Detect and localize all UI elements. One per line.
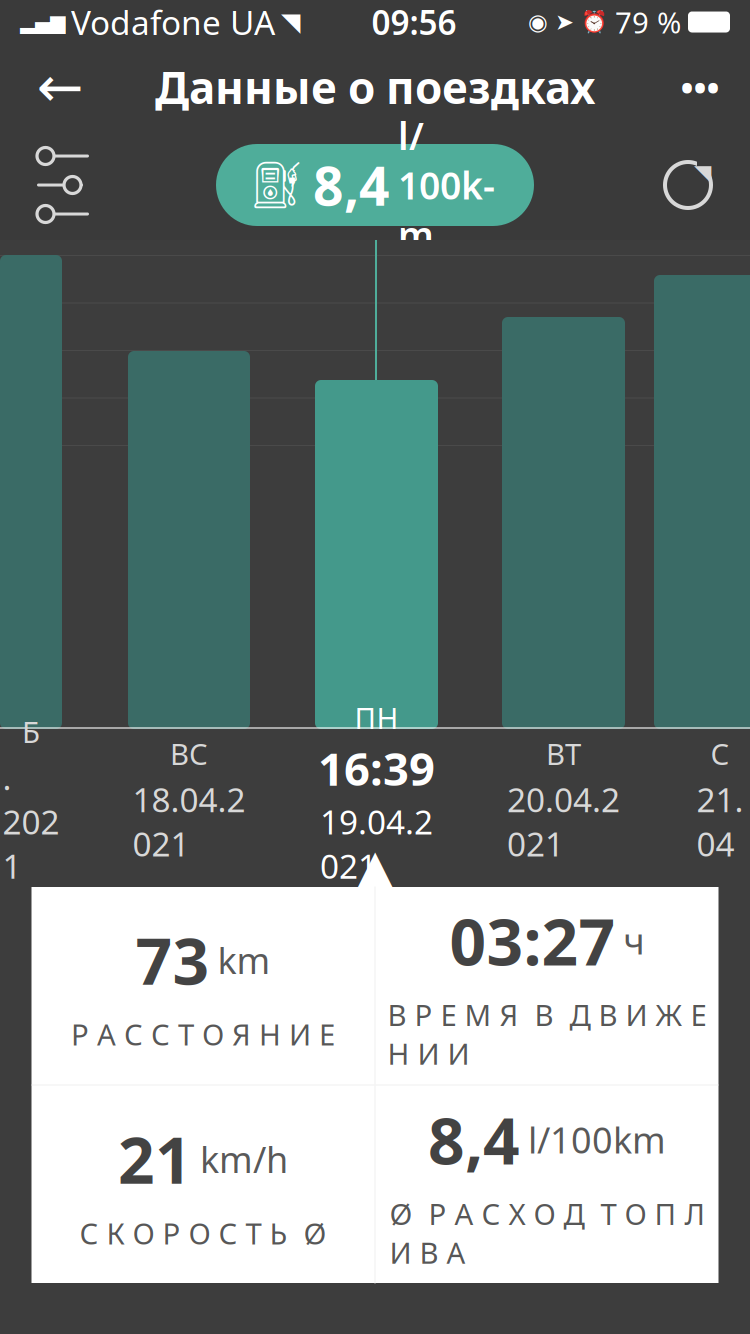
staticText: 79 % <box>615 2 681 41</box>
button[interactable]: 03:27 <box>375 886 718 1084</box>
staticText: 03:27 <box>449 898 615 983</box>
staticText: 20.04.2021 <box>507 777 620 866</box>
staticText: ПН <box>354 698 398 737</box>
staticText: 16:39 <box>318 738 435 798</box>
staticText: 8,4 <box>313 150 390 220</box>
staticText: ◉ <box>528 9 548 35</box>
button[interactable]: 21 <box>31 1085 374 1283</box>
button[interactable]: 8,4 <box>375 1085 718 1283</box>
staticText: В Р Е М Я В Д В И Ж Е Н И И <box>387 995 706 1073</box>
staticText: 18.04.2021 <box>132 777 245 866</box>
button[interactable]: Back <box>22 51 98 123</box>
staticText: ❜ <box>288 173 297 203</box>
staticText: ◥ <box>281 8 300 36</box>
staticText: ◥ <box>694 160 711 186</box>
button[interactable]: 73 <box>31 886 374 1084</box>
staticText: ▂▄▆ <box>20 11 65 33</box>
staticText: km <box>217 936 270 984</box>
staticText: ••• <box>680 64 719 110</box>
button[interactable]: Refresh <box>648 151 728 219</box>
staticText: ч <box>623 917 644 964</box>
staticText: ⏰ <box>581 10 608 34</box>
staticText: ▲ <box>348 834 401 912</box>
button[interactable]: ⛽︎ <box>216 144 534 226</box>
staticText: ← <box>36 55 83 119</box>
staticText: Vodafone UA <box>71 0 275 44</box>
staticText: l/100km <box>398 111 495 259</box>
button[interactable]: More options <box>672 65 728 109</box>
staticText: ВС <box>170 734 208 773</box>
staticText: .2021 <box>2 755 59 888</box>
staticText: 21 <box>118 1116 192 1201</box>
staticText: С К О Р О С Т Ь Ø <box>79 1213 326 1252</box>
staticText: 09:56 <box>371 0 456 44</box>
button[interactable]: Filter <box>22 146 104 224</box>
staticText: 19.04.2021 <box>320 799 433 888</box>
staticText: Ø Р А С Х О Д Т О П Л И В А <box>389 1194 704 1272</box>
staticText: С <box>710 734 729 773</box>
staticText: ⛽︎ <box>248 159 306 211</box>
staticText: 21.04 <box>696 777 743 866</box>
staticText: Данные о поездках <box>155 58 595 116</box>
staticText: Р А С С Т О Я Н И Е <box>71 1014 335 1053</box>
staticText: km/h <box>200 1135 288 1183</box>
staticText: 8,4 <box>428 1097 520 1182</box>
staticText: ВТ <box>546 734 581 773</box>
staticText: ➤ <box>555 9 574 35</box>
staticText: 73 <box>135 917 209 1002</box>
staticText: Б <box>22 712 40 751</box>
staticText: l/100km <box>528 1116 666 1163</box>
